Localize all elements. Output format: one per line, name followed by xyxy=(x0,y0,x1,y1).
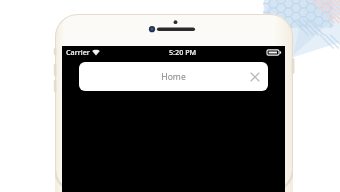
staticText: Home xyxy=(161,71,186,83)
staticText: Carrier xyxy=(66,47,90,57)
staticText: 5:20 PM xyxy=(169,47,197,57)
button[interactable]: Home xyxy=(79,62,268,91)
button[interactable]: Close xyxy=(247,69,263,85)
